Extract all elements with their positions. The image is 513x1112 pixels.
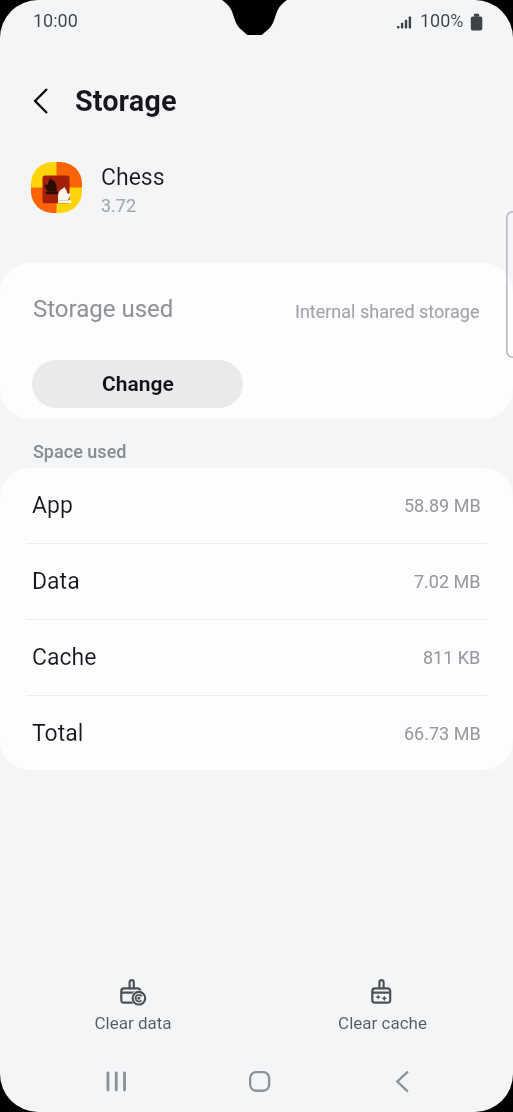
button[interactable] (0, 263, 513, 419)
button[interactable]: Back (368, 1053, 436, 1110)
staticText: Clear data (94, 1013, 172, 1033)
button[interactable]: App (0, 468, 513, 544)
staticText: Cache (32, 644, 97, 671)
button[interactable]: Home (225, 1053, 293, 1110)
button[interactable]: Recent apps (81, 1053, 149, 1110)
staticText: Internal shared storage (295, 301, 480, 322)
staticText: 3.72 (101, 195, 137, 216)
button[interactable]: Clear cache (320, 968, 444, 1038)
staticText: Space used (33, 441, 127, 462)
staticText: Change (102, 372, 174, 397)
staticText: App (32, 492, 73, 519)
staticText: Storage used (33, 295, 174, 323)
button[interactable]: Total (0, 696, 513, 770)
staticText: Chess (101, 164, 165, 191)
button[interactable]: Data (0, 544, 513, 620)
button[interactable]: Clear data (71, 968, 195, 1038)
staticText: Clear cache (338, 1013, 427, 1033)
staticText: 100% (420, 10, 464, 31)
staticText: 7.02 MB (414, 571, 481, 592)
staticText: 10:00 (33, 10, 78, 31)
staticText: Data (32, 568, 80, 595)
staticText: Storage (75, 84, 177, 118)
staticText: 58.89 MB (404, 495, 481, 516)
button[interactable]: Navigate up (18, 78, 63, 123)
button[interactable]: Change (32, 360, 243, 408)
staticText: 811 KB (423, 647, 481, 668)
button[interactable]: Cache (0, 620, 513, 696)
staticText: 66.73 MB (404, 723, 481, 744)
staticText: Total (32, 720, 84, 747)
